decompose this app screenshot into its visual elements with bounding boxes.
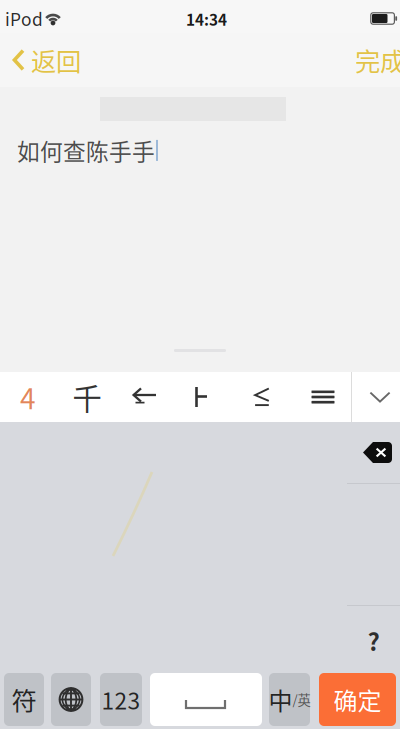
button[interactable]: Switch keyboard [51, 673, 91, 726]
button[interactable]: Candidate left arrow [116, 372, 174, 422]
staticText: 英 [297, 690, 310, 709]
button[interactable]: Help [347, 613, 400, 668]
staticText: ? [367, 623, 379, 658]
staticText: 符 [11, 681, 36, 718]
button[interactable]: 中 [269, 673, 310, 726]
button[interactable]: 123 [100, 673, 142, 726]
button[interactable]: Candidate less-than-or-equal symbol [233, 372, 291, 422]
staticText: 返回 [31, 42, 81, 78]
button[interactable]: Delete [347, 422, 400, 483]
button[interactable]: 确定 [319, 673, 396, 726]
staticText: 千 [72, 376, 101, 418]
button[interactable]: 4 [0, 372, 57, 422]
button[interactable]: Show more candidates [355, 372, 400, 422]
staticText: 确定 [333, 682, 381, 717]
button[interactable]: 千 [58, 372, 116, 422]
button[interactable]: 完成 [343, 33, 400, 87]
button[interactable]: 符 [4, 673, 44, 726]
staticText: 中 [268, 682, 292, 717]
staticText: 如何查陈手手 [17, 134, 155, 167]
staticText: 14:34 [186, 8, 227, 30]
staticText: / [292, 690, 297, 709]
button[interactable]: Space [150, 673, 262, 726]
button[interactable]: Candidate tee symbol [172, 372, 230, 422]
button[interactable]: Candidate bars symbol [294, 372, 352, 422]
button[interactable]: 返回 [0, 33, 93, 87]
staticText: 完成 [355, 42, 400, 78]
staticText: 4 [20, 377, 36, 417]
staticText: iPod [5, 6, 43, 31]
staticText: 123 [101, 683, 140, 716]
